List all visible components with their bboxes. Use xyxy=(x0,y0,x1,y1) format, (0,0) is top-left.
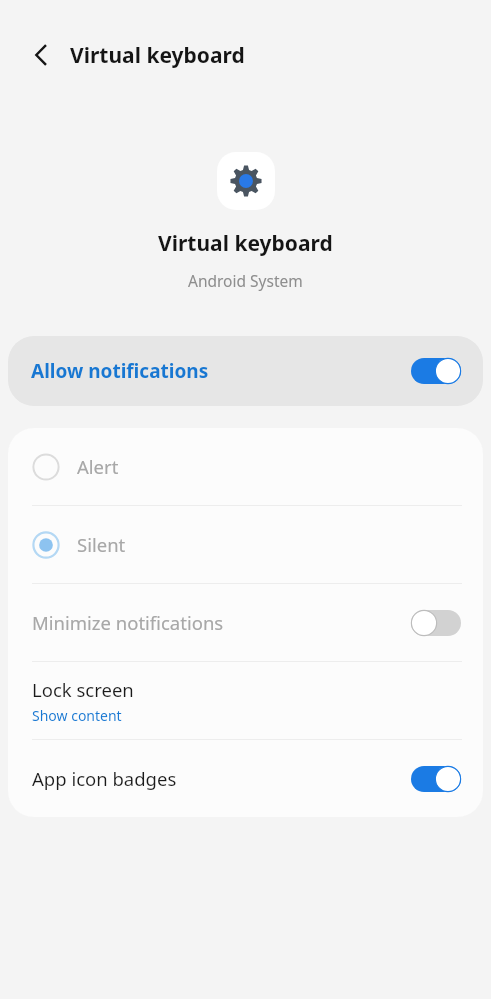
button[interactable]: App icon badges xyxy=(8,740,483,817)
button[interactable]: Back xyxy=(14,28,68,82)
button[interactable]: Silent xyxy=(8,506,483,583)
staticText: Show content xyxy=(32,706,122,725)
staticText: Android System xyxy=(188,270,303,291)
staticText: Virtual keyboard xyxy=(70,41,245,70)
staticText: Lock screen xyxy=(32,677,134,702)
staticText: Allow notifications xyxy=(31,358,411,384)
staticText: Virtual keyboard xyxy=(158,229,333,258)
button[interactable]: Alert xyxy=(8,428,483,505)
staticText: Alert xyxy=(77,454,119,479)
button[interactable]: Lock screen xyxy=(8,662,483,739)
button[interactable]: Allow notifications xyxy=(8,336,483,406)
staticText: Silent xyxy=(77,532,126,557)
staticText: Minimize notifications xyxy=(32,610,411,635)
button[interactable]: Minimize notifications xyxy=(8,584,483,661)
staticText: App icon badges xyxy=(32,766,411,791)
